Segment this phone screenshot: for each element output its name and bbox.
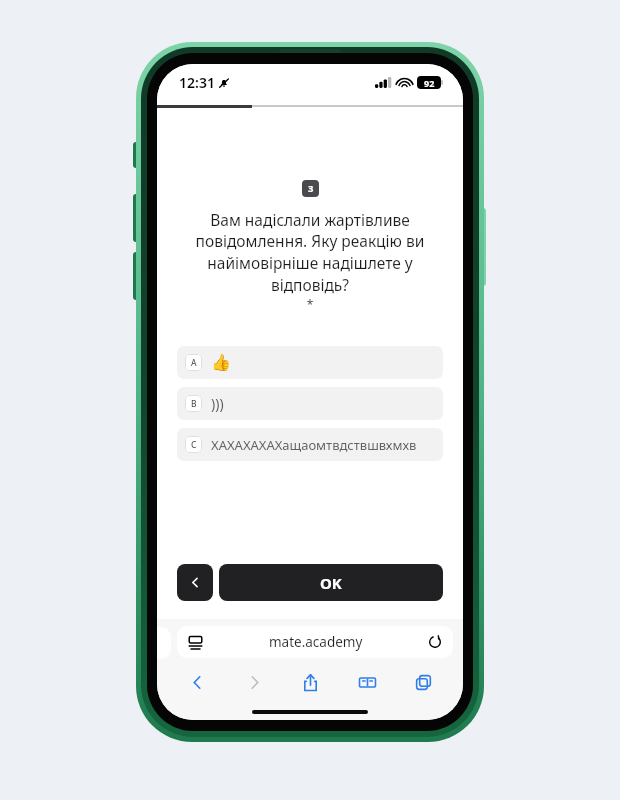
staticText: 👍 [211, 353, 231, 372]
other: Reload [428, 635, 442, 649]
button[interactable]: Forward [232, 667, 276, 697]
staticText: 12:31 [179, 73, 215, 92]
button[interactable]: B [177, 387, 443, 420]
button[interactable]: C [177, 428, 443, 461]
button[interactable]: Page settings [177, 626, 453, 658]
staticText: 92 [424, 77, 435, 89]
button[interactable]: Share [288, 667, 332, 697]
staticText: * [157, 296, 463, 312]
staticText: Вам надіслали жартівливе повідомлення. Я… [183, 209, 437, 296]
button[interactable]: Back [175, 667, 219, 697]
staticText: ХАХАХАХАХащаомтвдствшвхмхв [211, 436, 417, 454]
button[interactable]: Back [177, 564, 213, 601]
staticText: C [191, 439, 197, 451]
staticText: A [191, 357, 197, 369]
button[interactable]: A [177, 346, 443, 379]
other: Page settings [188, 635, 203, 650]
staticText: ))) [211, 394, 224, 413]
button[interactable]: Bookmarks [345, 667, 389, 697]
staticText: B [191, 398, 197, 410]
button[interactable]: Tabs [401, 667, 445, 697]
staticText: mate.academy [269, 633, 363, 651]
button[interactable]: OK [219, 564, 443, 601]
staticText: OK [320, 573, 342, 593]
staticText: 3 [308, 182, 314, 195]
